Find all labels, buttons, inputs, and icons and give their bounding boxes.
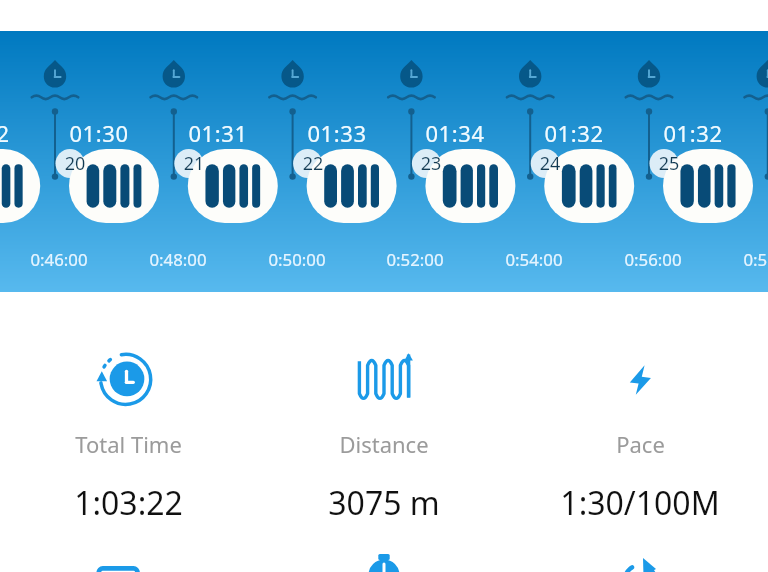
other: SWOLF: [606, 544, 674, 572]
staticText: 01:32: [0, 118, 40, 148]
staticText: 25: [629, 151, 709, 176]
button[interactable]: Calories: [0, 544, 256, 572]
staticText: 0:52:00: [355, 248, 475, 271]
staticText: 26: [748, 151, 768, 176]
staticText: 0:56:00: [593, 248, 713, 271]
staticText: 01:31: [158, 118, 278, 148]
staticText: 23: [391, 151, 471, 176]
other: Total Time: [94, 352, 162, 408]
staticText: 01:31: [752, 118, 768, 148]
button[interactable]: Total Time: [0, 352, 256, 525]
other: Strokes: [350, 544, 418, 572]
staticText: 0:50:00: [237, 248, 357, 271]
staticText: Distance: [339, 429, 429, 459]
staticText: 01:32: [633, 118, 753, 148]
staticText: Total Time: [75, 429, 182, 459]
other: Pace: [606, 352, 674, 408]
staticText: 0:58:00: [712, 248, 768, 271]
staticText: 3075 m: [328, 481, 440, 525]
staticText: 22: [273, 151, 353, 176]
button[interactable]: SWOLF: [512, 544, 768, 572]
staticText: 1:03:22: [74, 481, 183, 525]
staticText: 21: [154, 151, 234, 176]
staticText: Pace: [616, 429, 665, 459]
button[interactable]: Distance: [256, 352, 512, 525]
button[interactable]: Strokes: [256, 544, 512, 572]
staticText: 01:32: [514, 118, 634, 148]
staticText: 01:33: [277, 118, 397, 148]
staticText: 0:54:00: [474, 248, 594, 271]
button[interactable]: Lap chart: [0, 31, 768, 292]
other: Distance: [350, 352, 418, 408]
staticText: 20: [35, 151, 115, 176]
button[interactable]: Pace: [512, 352, 768, 525]
other: Calories: [94, 544, 162, 572]
staticText: 0:48:00: [118, 248, 238, 271]
staticText: 01:30: [39, 118, 159, 148]
staticText: 01:34: [395, 118, 515, 148]
staticText: 24: [510, 151, 590, 176]
staticText: 0:46:00: [0, 248, 119, 271]
staticText: 1:30/100M: [560, 481, 720, 525]
